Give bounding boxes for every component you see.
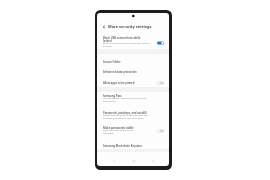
button[interactable]: Samsung Blockchain Keystore bbox=[97, 141, 169, 151]
staticText: Samsung Blockchain Keystore bbox=[103, 144, 164, 148]
button[interactable]: Recent apps bbox=[111, 158, 116, 163]
staticText: Choose what to do with your passwords an… bbox=[103, 114, 148, 120]
button[interactable]: Home bbox=[131, 158, 136, 163]
button[interactable]: Allow apps to be pinned bbox=[97, 78, 169, 88]
button[interactable]: Block USB connections while locked bbox=[97, 34, 169, 51]
staticText: More security settings bbox=[108, 24, 152, 29]
button[interactable]: Make passwords visible bbox=[157, 129, 164, 133]
button[interactable]: Samsung Pass bbox=[97, 92, 169, 106]
staticText: Make passwords visible bbox=[103, 126, 134, 130]
staticText: Samsung Pass bbox=[103, 94, 122, 98]
staticText: Allow apps to be pinned bbox=[103, 81, 157, 85]
button[interactable]: Navigate up bbox=[97, 23, 169, 30]
button[interactable]: Secure Folder bbox=[97, 57, 169, 67]
button[interactable]: Block USB connections while locked bbox=[157, 41, 164, 45]
staticText: Block USB connections while locked bbox=[103, 36, 141, 43]
staticText: Secure Folder bbox=[103, 60, 164, 64]
button[interactable]: Passwords, passkeys, and autofill bbox=[97, 109, 169, 123]
button[interactable]: Enhanced data protection bbox=[97, 67, 169, 77]
staticText: Passwords, passkeys, and autofill bbox=[103, 111, 147, 115]
button[interactable]: Allow apps to be pinned bbox=[157, 81, 164, 85]
other: Navigate up bbox=[102, 25, 106, 29]
button[interactable]: Make passwords visible bbox=[97, 124, 169, 138]
button[interactable]: Back bbox=[150, 158, 155, 163]
staticText: Enhanced data protection bbox=[103, 70, 164, 74]
staticText: Use biometrics to verify your identity e… bbox=[103, 97, 147, 103]
staticText: Show characters briefly as you type them… bbox=[103, 129, 134, 135]
staticText: Block new USB connections while your pho… bbox=[103, 42, 149, 48]
